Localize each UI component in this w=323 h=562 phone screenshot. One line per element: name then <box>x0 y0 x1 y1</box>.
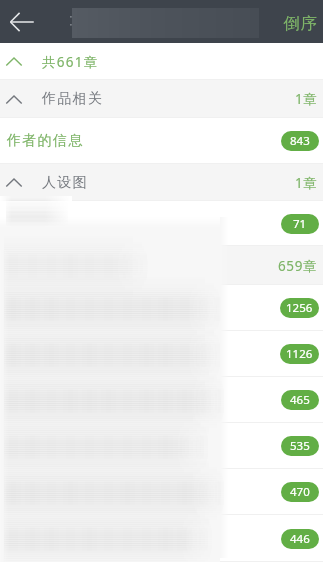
staticText: 71 <box>293 216 307 232</box>
staticText: 倒序 <box>283 13 317 34</box>
button[interactable]: 535 <box>0 423 323 469</box>
staticText: 1章 <box>295 90 318 108</box>
button[interactable]: 71 <box>0 201 323 246</box>
button[interactable]: 1126 <box>0 331 323 377</box>
button[interactable]: Back <box>0 0 44 43</box>
staticText: 470 <box>290 484 310 500</box>
staticText: 446 <box>290 531 310 547</box>
button[interactable]: 659章 <box>0 246 323 285</box>
staticText: 1章 <box>295 174 318 192</box>
staticText: 作者的信息 <box>7 132 84 150</box>
button[interactable]: 465 <box>0 377 323 423</box>
button[interactable]: 446 <box>0 515 323 562</box>
staticText: 535 <box>290 438 310 454</box>
staticText: 843 <box>290 133 310 149</box>
button[interactable]: 倒序 <box>283 13 317 34</box>
button[interactable]: 共661章 <box>0 43 323 80</box>
button[interactable]: 作品相关 <box>0 80 323 118</box>
staticText: 659章 <box>278 257 318 275</box>
button[interactable]: 人设图 <box>0 164 323 201</box>
staticText: 人设图 <box>42 174 88 192</box>
staticText: 465 <box>290 392 310 408</box>
button[interactable]: 1256 <box>0 285 323 331</box>
staticText: 1256 <box>286 300 313 316</box>
staticText: 作品相关 <box>42 90 104 108</box>
staticText: 共661章 <box>42 53 99 71</box>
button[interactable]: 470 <box>0 469 323 515</box>
staticText: 1126 <box>286 346 313 362</box>
button[interactable]: 作者的信息 <box>0 118 323 164</box>
